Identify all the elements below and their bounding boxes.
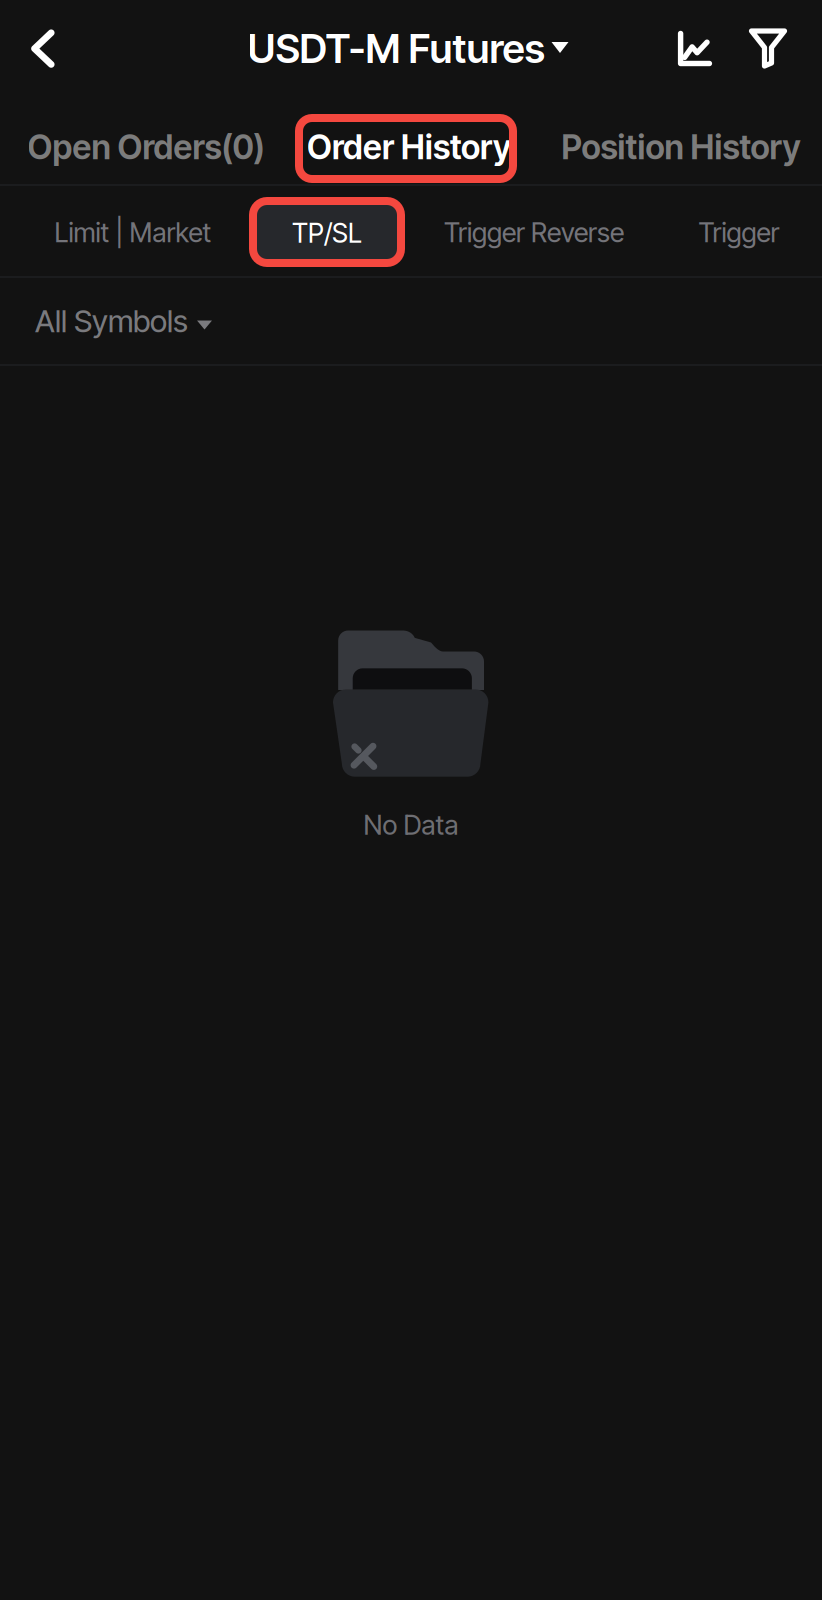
button[interactable]: USDT-M Futures <box>233 0 582 97</box>
staticText: Position History <box>561 127 800 167</box>
button[interactable]: Order History <box>291 97 527 184</box>
button[interactable]: All Symbols <box>0 278 232 364</box>
staticText: No Data <box>363 809 458 841</box>
button[interactable]: Trigger <box>659 186 819 276</box>
staticText: Trigger <box>698 216 779 249</box>
staticText: USDT-M Futures <box>247 24 544 73</box>
staticText: Open Orders(0) <box>27 127 264 167</box>
staticText: Trigger Reverse <box>444 216 624 249</box>
button[interactable]: Limit | Market <box>33 186 233 276</box>
staticText: TP/SL <box>292 217 362 249</box>
button[interactable]: Filter <box>744 0 822 97</box>
staticText: All Symbols <box>35 302 188 339</box>
button[interactable]: Chart <box>672 0 744 97</box>
button[interactable]: Back <box>0 0 86 97</box>
staticText: Limit | Market <box>54 216 211 249</box>
staticText: Order History <box>307 127 511 167</box>
button[interactable]: Open Orders(0) <box>6 97 286 184</box>
button[interactable]: TP/SL <box>249 187 404 277</box>
button[interactable]: Position History <box>541 97 821 184</box>
button[interactable]: Trigger Reverse <box>424 186 644 276</box>
